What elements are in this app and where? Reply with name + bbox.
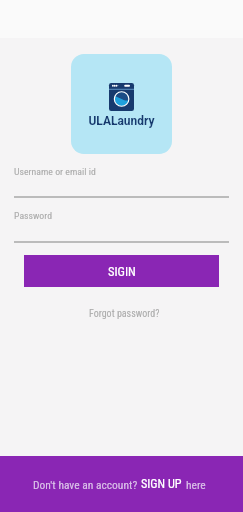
staticText: Username or email id	[14, 166, 96, 177]
staticText: SIGIN	[108, 264, 136, 279]
staticText: Forgot password?	[89, 308, 160, 320]
staticText: Don't have an account?	[33, 478, 138, 491]
button[interactable]: SIGIN	[24, 255, 219, 287]
other: Washing machine logo	[109, 83, 134, 111]
staticText: here	[186, 478, 206, 491]
staticText: ULALaundry	[71, 114, 172, 128]
button[interactable]: SIGN UP	[141, 477, 182, 491]
staticText: Password	[14, 210, 53, 221]
staticText: SIGN UP	[141, 477, 182, 491]
button[interactable]: Forgot password?	[3, 308, 243, 320]
